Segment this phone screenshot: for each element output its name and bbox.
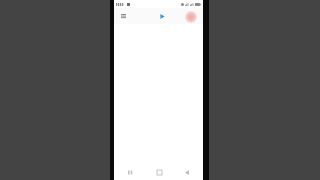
button[interactable]: Recents: [124, 166, 136, 178]
button[interactable]: Menu: [118, 11, 128, 21]
button[interactable]: App action: [158, 12, 167, 21]
button[interactable]: Back: [181, 166, 193, 178]
button[interactable]: Home: [153, 166, 165, 178]
button[interactable]: Compose: [185, 11, 197, 23]
